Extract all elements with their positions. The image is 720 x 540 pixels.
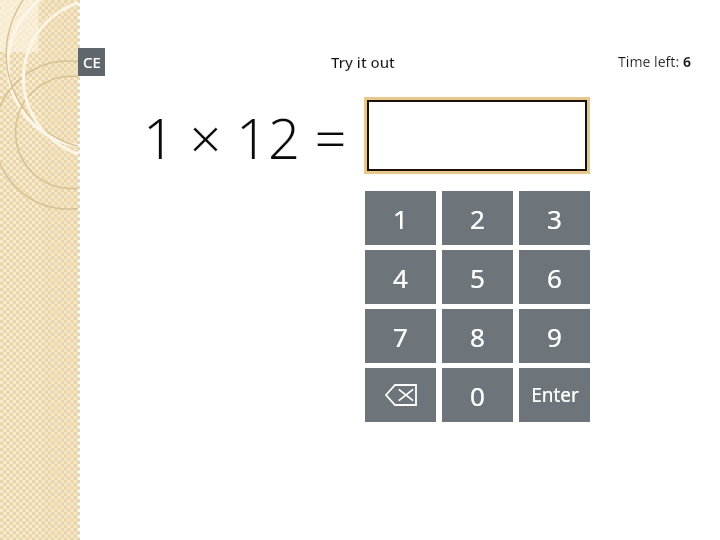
button[interactable]: 6: [519, 250, 590, 304]
staticText: 6: [547, 260, 562, 295]
button[interactable]: 3: [519, 191, 590, 245]
staticText: 9: [547, 319, 562, 354]
button[interactable]: 4: [365, 250, 436, 304]
button[interactable]: 2: [442, 191, 513, 245]
button[interactable]: 9: [519, 309, 590, 363]
button[interactable]: 0: [442, 368, 513, 422]
staticText: 2: [470, 201, 485, 236]
button[interactable]: CE: [78, 48, 105, 76]
staticText: Try it out: [331, 52, 395, 72]
button[interactable]: Backspace: [365, 368, 436, 422]
staticText: 7: [393, 319, 408, 354]
staticText: 0: [470, 378, 485, 413]
staticText: 1 × 12 =: [143, 99, 347, 175]
staticText: 5: [470, 260, 485, 295]
staticText: 1: [393, 201, 408, 236]
button[interactable]: 8: [442, 309, 513, 363]
staticText: 3: [547, 201, 562, 236]
button[interactable]: 5: [442, 250, 513, 304]
staticText: 4: [393, 260, 408, 295]
staticText: 6: [683, 52, 692, 71]
button[interactable]: 1: [365, 191, 436, 245]
staticText: 8: [470, 319, 485, 354]
staticText: Enter: [531, 382, 579, 408]
button[interactable]: 7: [365, 309, 436, 363]
staticText: CE: [83, 52, 101, 72]
button[interactable]: Enter: [519, 368, 590, 422]
staticText: Time left:: [618, 52, 683, 71]
button[interactable]: Answer field: [364, 97, 590, 174]
